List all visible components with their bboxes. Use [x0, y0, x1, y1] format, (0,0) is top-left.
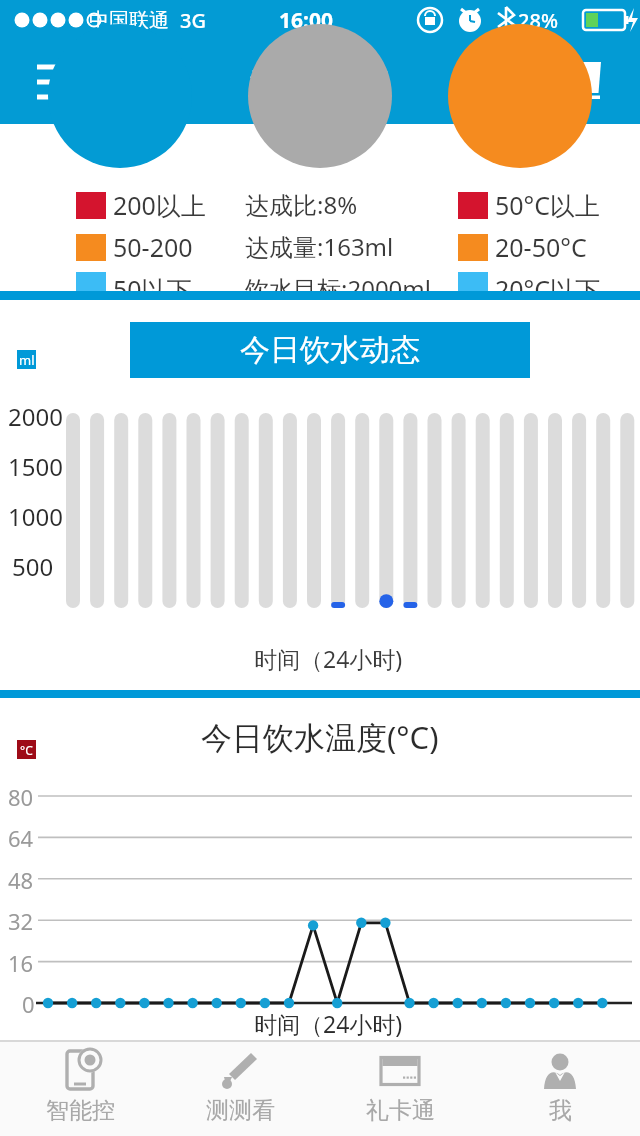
staticText: 200以上	[113, 188, 206, 222]
staticText: ml	[19, 351, 35, 369]
staticText: 50-200	[113, 230, 193, 264]
button[interactable]: Water glass	[560, 54, 616, 110]
staticText: 64	[8, 823, 34, 853]
staticText: 时间（24小时)	[254, 1008, 403, 1039]
staticText: 我	[549, 1096, 572, 1125]
button[interactable]: 智能控	[0, 1042, 160, 1136]
staticText: 50以下	[113, 272, 192, 291]
staticText: 16:00	[279, 6, 333, 35]
button[interactable]: 礼卡通	[320, 1042, 480, 1136]
staticText: 500	[12, 550, 54, 583]
staticText: 今日饮水温度(°C)	[201, 716, 439, 758]
staticText: 32	[8, 906, 34, 936]
button[interactable]: 今日饮水动态	[130, 322, 530, 378]
staticText: 饮水目标:2000ml	[245, 272, 431, 291]
staticText: 1000	[8, 500, 63, 533]
staticText: 50°C以上	[495, 188, 601, 222]
button[interactable]: 测测看	[160, 1042, 320, 1136]
staticText: 时间（24小时)	[254, 643, 403, 674]
button[interactable]: 我	[480, 1042, 640, 1136]
staticText: 智能控	[46, 1096, 115, 1125]
staticText: 今日饮水动态	[240, 331, 420, 369]
staticText: 中国联通	[89, 8, 169, 33]
staticText: 浩泽净水家	[250, 65, 390, 100]
staticText: 28%	[518, 7, 558, 34]
staticText: 0	[22, 989, 35, 1019]
staticText: 48	[8, 865, 34, 895]
staticText: 3G	[180, 7, 206, 34]
staticText: 2000	[8, 400, 63, 433]
staticText: °C	[20, 742, 33, 758]
staticText: 1500	[8, 450, 63, 483]
staticText: 16	[8, 948, 34, 978]
staticText: 达成比:8%	[245, 188, 358, 221]
staticText: 20-50°C	[495, 230, 587, 264]
button[interactable]: Menu	[30, 52, 90, 112]
staticText: 达成量:163ml	[245, 230, 394, 263]
staticText: 20°C以下	[495, 272, 601, 291]
staticText: 礼卡通	[366, 1096, 435, 1125]
staticText: 测测看	[206, 1096, 275, 1125]
staticText: 80	[8, 782, 34, 812]
